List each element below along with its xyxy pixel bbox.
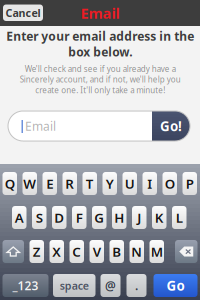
button[interactable]: L: [172, 206, 186, 229]
staticText: N: [131, 243, 142, 260]
staticText: Go: [166, 277, 184, 294]
staticText: Z: [33, 243, 41, 260]
button[interactable]: Shift: [2, 240, 24, 263]
staticText: O: [165, 175, 175, 192]
staticText: Cancel: [5, 6, 40, 20]
staticText: M: [151, 243, 163, 260]
staticText: J: [137, 209, 141, 226]
staticText: D: [54, 209, 64, 226]
button[interactable]: Y: [102, 172, 117, 195]
staticText: L: [176, 209, 183, 226]
button[interactable]: A: [12, 206, 26, 229]
button[interactable]: X: [49, 240, 64, 263]
staticText: Go!: [160, 117, 182, 135]
button[interactable]: H: [112, 206, 126, 229]
button[interactable]: Cancel: [3, 4, 43, 21]
button[interactable]: D: [52, 206, 66, 229]
button[interactable]: M: [149, 240, 164, 263]
staticText: G: [94, 209, 104, 226]
button[interactable]: B: [109, 240, 124, 263]
staticText: E: [46, 175, 53, 192]
staticText: U: [125, 175, 135, 192]
staticText: H: [114, 209, 124, 226]
staticText: Email: [25, 118, 56, 134]
button[interactable]: S: [32, 206, 46, 229]
staticText: X: [52, 243, 61, 260]
button[interactable]: C: [69, 240, 84, 263]
staticText: F: [76, 209, 83, 226]
staticText: B: [112, 243, 121, 260]
staticText: .: [135, 277, 138, 293]
staticText: W: [23, 175, 36, 192]
staticText: P: [186, 175, 194, 192]
button[interactable]: _123: [2, 274, 48, 297]
button[interactable]: space: [53, 274, 95, 297]
staticText: A: [15, 209, 24, 226]
button[interactable]: @: [100, 274, 120, 297]
staticText: V: [93, 243, 101, 260]
staticText: I: [147, 175, 152, 192]
button[interactable]: E: [42, 172, 57, 195]
staticText: We'll check and see if you already have …: [19, 64, 180, 95]
button[interactable]: G: [92, 206, 106, 229]
button[interactable]: W: [22, 172, 37, 195]
button[interactable]: Q: [2, 172, 17, 195]
staticText: Y: [106, 175, 114, 192]
button[interactable]: F: [72, 206, 86, 229]
button[interactable]: J: [132, 206, 146, 229]
button[interactable]: .: [126, 274, 146, 297]
staticText: R: [65, 175, 74, 192]
button[interactable]: P: [182, 172, 197, 195]
button[interactable]: O: [162, 172, 177, 195]
staticText: T: [86, 175, 94, 192]
button[interactable]: T: [82, 172, 97, 195]
button[interactable]: Delete: [175, 240, 197, 263]
staticText: space: [60, 278, 89, 293]
staticText: K: [155, 209, 164, 226]
button[interactable]: Go: [153, 274, 197, 297]
staticText: C: [72, 243, 81, 260]
staticText: _123: [12, 277, 38, 293]
staticText: Email: [80, 3, 119, 23]
staticText: S: [36, 209, 43, 226]
staticText: Q: [5, 175, 15, 192]
button[interactable]: Z: [29, 240, 44, 263]
staticText: @: [105, 277, 116, 293]
button[interactable]: V: [89, 240, 104, 263]
button[interactable]: U: [122, 172, 137, 195]
button[interactable]: I: [142, 172, 157, 195]
button[interactable]: R: [62, 172, 77, 195]
button[interactable]: Go!: [152, 111, 190, 141]
button[interactable]: N: [129, 240, 144, 263]
button[interactable]: K: [152, 206, 166, 229]
staticText: Enter your email address in the box belo…: [6, 28, 194, 60]
